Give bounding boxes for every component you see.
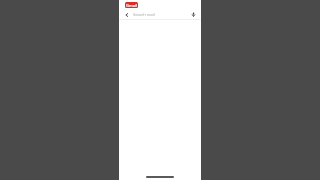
button[interactable]: Gmail: [125, 2, 138, 8]
button[interactable]: Back: [123, 11, 130, 18]
button[interactable]: Search mail: [133, 12, 190, 17]
staticText: Search mail: [133, 12, 155, 17]
button[interactable]: Voice search: [190, 11, 197, 18]
staticText: Gmail: [126, 3, 138, 8]
